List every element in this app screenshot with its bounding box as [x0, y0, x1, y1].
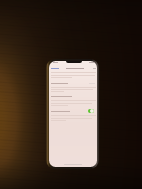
button[interactable]: Toggle [88, 109, 94, 113]
button[interactable]: Back [50, 67, 60, 70]
